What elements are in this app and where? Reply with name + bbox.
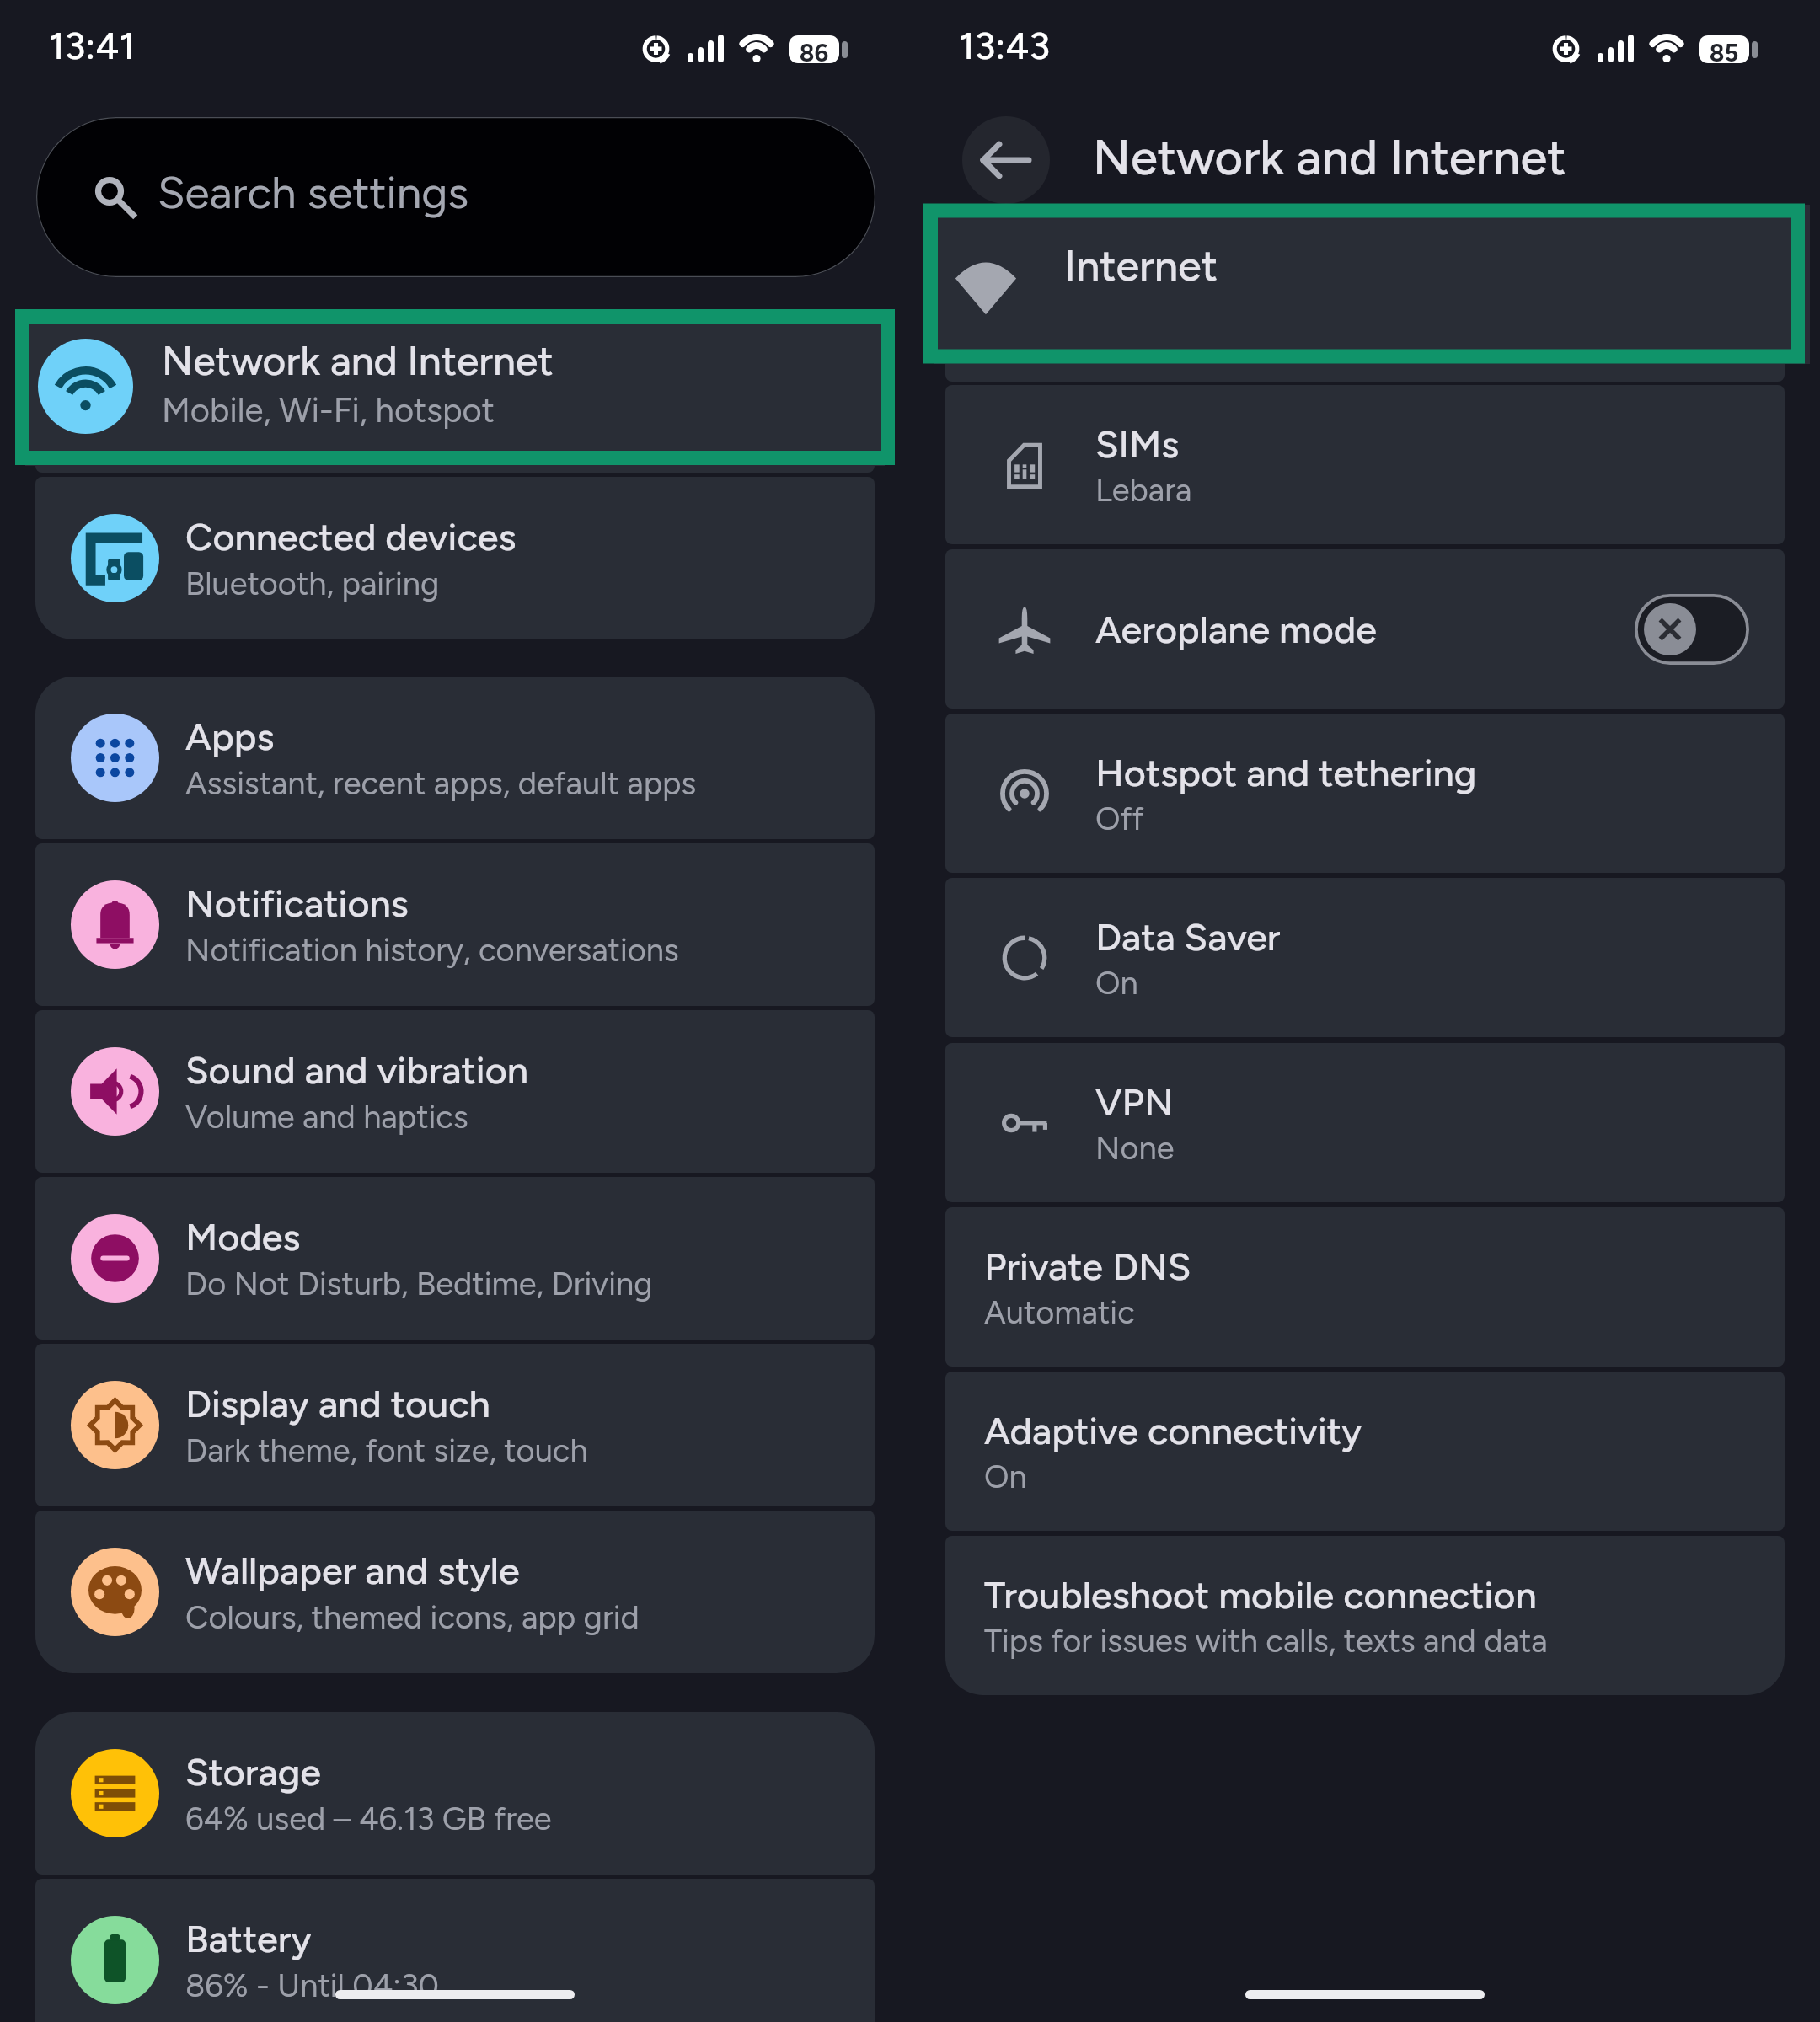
staticText: Adaptive connectivity <box>984 1408 1362 1453</box>
staticText: Lebara <box>1095 471 1192 510</box>
button[interactable]: Sound and vibration <box>35 1010 875 1173</box>
staticText: Troubleshoot mobile connection <box>984 1572 1537 1618</box>
staticText: SIMs <box>1095 421 1180 467</box>
button[interactable]: Apps <box>35 677 875 839</box>
button[interactable]: VPN <box>945 1043 1785 1202</box>
staticText: None <box>1095 1129 1175 1168</box>
staticText: 13:41 <box>49 23 136 68</box>
button[interactable]: Storage <box>35 1712 875 1875</box>
staticText: Network and Internet <box>162 336 554 385</box>
staticText: 64% used – 46.13 GB free <box>185 1800 552 1838</box>
staticText: Private DNS <box>984 1244 1191 1289</box>
staticText: Wallpaper and style <box>185 1548 520 1593</box>
staticText: Internet <box>1064 240 1218 292</box>
button[interactable]: Display and touch <box>35 1344 875 1506</box>
staticText: Notification history, conversations <box>185 931 679 970</box>
staticText: Assistant, recent apps, default apps <box>185 764 697 803</box>
staticText: Battery <box>185 1916 312 1961</box>
button[interactable]: Internet <box>945 206 1785 382</box>
button[interactable]: Wallpaper and style <box>35 1511 875 1673</box>
staticText: Do Not Disturb, Bedtime, Driving <box>185 1265 653 1303</box>
staticText: Network and Internet <box>1093 128 1566 187</box>
staticText: Sound and vibration <box>185 1047 528 1093</box>
staticText: 86 <box>789 38 839 67</box>
staticText: Automatic <box>984 1293 1135 1332</box>
staticText: Hotspot and tethering <box>1095 750 1477 795</box>
button[interactable]: Modes <box>35 1177 875 1340</box>
staticText: Dark theme, font size, touch <box>185 1431 588 1470</box>
staticText: Modes <box>185 1214 301 1260</box>
staticText: Apps <box>185 714 275 759</box>
staticText: 13:43 <box>959 23 1051 68</box>
button[interactable]: SIMs <box>945 385 1785 544</box>
staticText: Colours, themed icons, app grid <box>185 1598 640 1637</box>
button[interactable]: Aeroplane mode <box>945 549 1785 709</box>
staticText: Aeroplane mode <box>1095 607 1377 652</box>
staticText: Bluetooth, pairing <box>185 564 440 603</box>
staticText: Volume and haptics <box>185 1098 468 1137</box>
staticText: Tips for issues with calls, texts and da… <box>984 1622 1548 1661</box>
staticText: Connected devices <box>185 514 517 559</box>
button[interactable]: Private DNS <box>945 1207 1785 1367</box>
button[interactable]: Notifications <box>35 843 875 1006</box>
button[interactable]: Adaptive connectivity <box>945 1372 1785 1531</box>
button[interactable]: Connected devices <box>35 477 875 639</box>
staticText: Display and touch <box>185 1381 490 1426</box>
button[interactable]: Data Saver <box>945 878 1785 1037</box>
staticText: Storage <box>185 1749 321 1795</box>
button[interactable]: Network and Internet <box>35 310 875 473</box>
button[interactable]: Battery <box>35 1879 875 2022</box>
button[interactable]: Aeroplane mode <box>1635 594 1749 665</box>
staticText: Mobile, Wi-Fi, hotspot <box>162 390 495 431</box>
staticText: 86% - Until 04:30 <box>185 1966 439 2005</box>
button[interactable] <box>25 310 885 466</box>
staticText: Search settings <box>158 166 469 220</box>
staticText: On <box>1095 964 1138 1003</box>
staticText: On <box>984 1458 1027 1496</box>
button[interactable]: Search settings <box>36 117 875 277</box>
staticText: Data Saver <box>1095 914 1281 960</box>
button[interactable]: Hotspot and tethering <box>945 714 1785 873</box>
button[interactable]: Back <box>962 116 1050 204</box>
staticText: Off <box>1095 800 1144 838</box>
staticText: Notifications <box>185 880 409 926</box>
button[interactable] <box>934 205 1810 364</box>
staticText: VPN <box>1095 1079 1174 1125</box>
staticText: 85 <box>1699 38 1749 67</box>
button[interactable]: Troubleshoot mobile connection <box>945 1536 1785 1695</box>
